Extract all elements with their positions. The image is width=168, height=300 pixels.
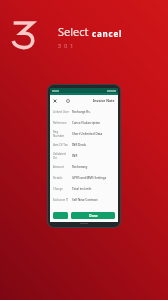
- button[interactable]: Close: [53, 99, 57, 103]
- button[interactable]: Details: [50, 172, 118, 183]
- staticText: Reg Number: [53, 130, 70, 138]
- staticText: Details: [53, 176, 70, 180]
- staticText: Charge: [53, 187, 70, 191]
- button[interactable]: Linked User: [50, 106, 118, 117]
- staticText: Amount: [53, 165, 70, 169]
- button[interactable]: Back: [53, 212, 68, 219]
- staticText: cancel: [92, 28, 123, 39]
- staticText: Validated On: [53, 152, 70, 160]
- staticText: Invoice Note: [93, 98, 115, 103]
- button[interactable]: Reference: [50, 117, 118, 128]
- staticText: Recharang: [72, 165, 88, 169]
- staticText: INR: [72, 154, 78, 158]
- staticText: Done: [89, 214, 98, 218]
- staticText: Cancel Subscription: [72, 121, 101, 125]
- staticText: INR Deals: [72, 143, 86, 147]
- button[interactable]: Exclusive Tl: [50, 194, 118, 205]
- button[interactable]: Validated On: [50, 150, 118, 161]
- button[interactable]: Close: [50, 95, 118, 106]
- staticText: GPRS and MMS Settings: [72, 176, 107, 180]
- staticText: Recharge Rs.: [72, 110, 91, 114]
- staticText: Total incl.mth: [72, 187, 92, 191]
- staticText: 3 0 1: [58, 43, 75, 50]
- staticText: Amt Of Tax: [53, 143, 70, 147]
- button[interactable]: Amt Of Tax: [50, 139, 118, 150]
- staticText: Reference: [53, 121, 70, 125]
- staticText: Short Unlimited Data: [72, 132, 103, 136]
- button[interactable]: Done: [71, 212, 115, 219]
- staticText: Exclusive Tl: [53, 198, 70, 202]
- staticText: Self New Contract: [72, 198, 98, 202]
- staticText: Select: [58, 24, 89, 39]
- button[interactable]: Charge: [50, 183, 118, 194]
- button[interactable]: Menu: [66, 99, 70, 103]
- button[interactable]: Three logo: [10, 20, 36, 50]
- button[interactable]: Reg Number: [50, 128, 118, 139]
- button[interactable]: Amount: [50, 161, 118, 172]
- staticText: Linked User: [53, 110, 70, 114]
